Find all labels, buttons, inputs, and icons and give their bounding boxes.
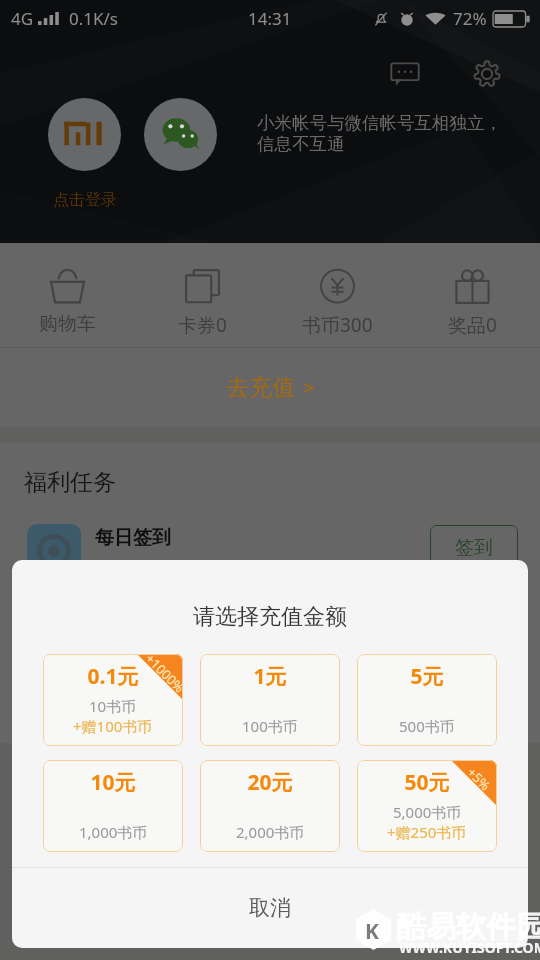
staticText: 50元 — [357, 768, 497, 797]
button[interactable]: Settings — [468, 55, 506, 93]
button[interactable]: 书币300 — [270, 269, 405, 338]
button[interactable]: +5% — [357, 760, 497, 852]
staticText: 酷易软件园 — [396, 908, 540, 946]
button[interactable]: 签到 — [430, 525, 518, 571]
staticText: > — [303, 374, 315, 401]
button[interactable]: Messages — [386, 55, 424, 93]
button[interactable]: 购物车 — [0, 269, 135, 336]
staticText: 500书币 — [399, 716, 455, 736]
staticText: 10书币 — [89, 696, 137, 716]
staticText: 1元 — [200, 662, 340, 691]
staticText: 10元 — [43, 768, 183, 797]
staticText: +赠100书币 — [73, 716, 153, 736]
staticText: 1,000书币 — [79, 822, 148, 842]
staticText: 购物车 — [39, 312, 96, 336]
button[interactable]: 5元 — [357, 654, 497, 746]
staticText: +1000% — [142, 654, 183, 696]
staticText: 福利任务 — [24, 468, 116, 497]
staticText: 20元 — [200, 768, 340, 797]
staticText: 卡券0 — [178, 312, 227, 338]
staticText: 0.1元 — [43, 662, 183, 691]
staticText: 100书币 — [242, 716, 298, 736]
button[interactable]: Xiaomi account — [48, 98, 121, 171]
button[interactable]: +1000% — [43, 654, 183, 746]
staticText: 奖品0 — [448, 312, 497, 338]
staticText: 取消 — [249, 895, 291, 921]
staticText: 72% — [453, 7, 487, 30]
staticText: 请选择充值金额 — [12, 603, 528, 631]
staticText: 去充值 — [226, 373, 295, 402]
staticText: 5元 — [357, 662, 497, 691]
staticText: 2,000书币 — [236, 822, 305, 842]
staticText: +赠250书币 — [387, 822, 467, 842]
staticText: 每日签到 — [95, 526, 171, 550]
staticText: 点击登录 — [53, 190, 117, 210]
staticText: +5% — [463, 763, 494, 794]
staticText: 0.1K/s — [69, 7, 118, 30]
button[interactable]: 1元 — [200, 654, 340, 746]
button[interactable]: 奖品0 — [405, 269, 540, 338]
button[interactable]: WeChat account — [144, 98, 217, 171]
staticText: WWW.KUYISOFT.COM — [399, 938, 540, 957]
staticText: 签到 — [455, 536, 493, 560]
button[interactable]: 10元 — [43, 760, 183, 852]
staticText: 4G — [11, 7, 34, 30]
staticText: 书币300 — [302, 312, 373, 338]
button[interactable]: 20元 — [200, 760, 340, 852]
button[interactable]: 卡券0 — [135, 269, 270, 338]
staticText: 5,000书币 — [393, 802, 462, 822]
button[interactable]: 去充值 — [0, 348, 540, 427]
button[interactable]: 取消 — [12, 868, 528, 948]
staticText: K — [365, 917, 379, 946]
staticText: 小米帐号与微信帐号互相独立， 信息不互通 — [257, 112, 502, 155]
staticText: 14:31 — [248, 7, 292, 30]
